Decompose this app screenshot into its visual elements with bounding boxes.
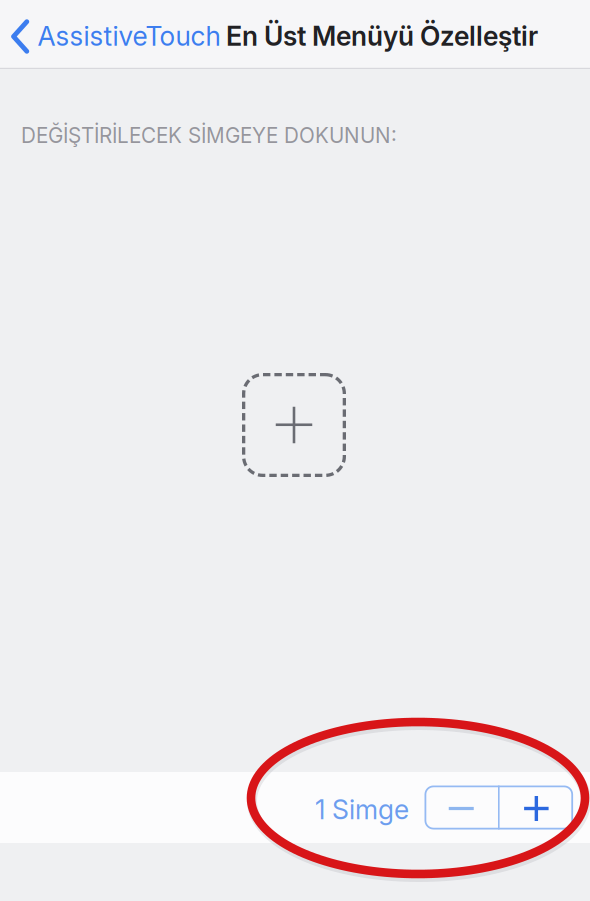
staticText: 1 Simge [315,793,409,826]
button[interactable]: Add icon [242,373,346,477]
staticText: En Üst Menüyü Özelleştir [226,20,538,52]
staticText: DEĞİŞTİRİLECEK SİMGEYE DOKUNUN: [21,123,397,148]
navigationBar: En Üst Menüyü Özelleştir [0,0,590,69]
button[interactable]: AssistiveTouch [0,0,228,69]
toolbar [0,772,590,843]
staticText: AssistiveTouch [37,20,220,52]
button[interactable]: Increase icon count [500,785,573,829]
button[interactable]: Decrease icon count [424,785,498,829]
